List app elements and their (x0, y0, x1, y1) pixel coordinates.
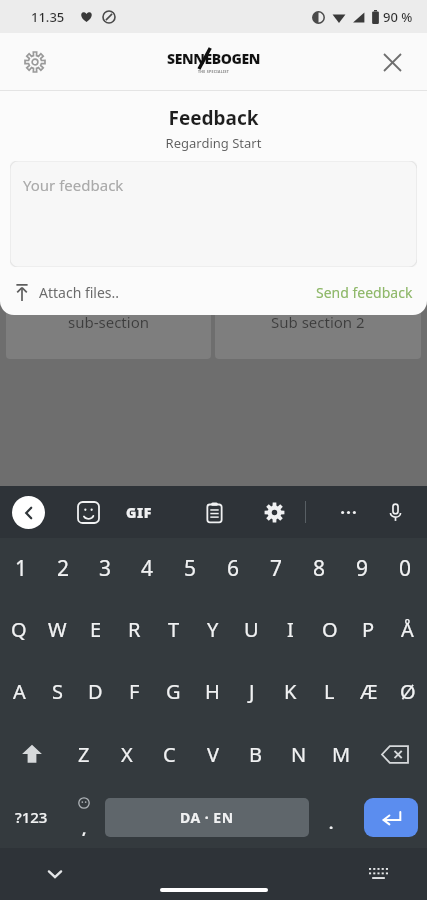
button[interactable]: GIF (126, 503, 152, 522)
button[interactable]: A (0, 660, 38, 722)
staticText: M (332, 741, 351, 768)
staticText: DA · EN (180, 808, 234, 827)
staticText: D (88, 678, 103, 705)
button[interactable]: D (76, 660, 115, 722)
button[interactable]: C (148, 722, 191, 786)
button[interactable]: X (105, 722, 148, 786)
staticText: 4 (141, 554, 154, 583)
button[interactable]: Back (12, 496, 45, 529)
button[interactable]: More options (330, 494, 366, 530)
button[interactable]: V (191, 722, 234, 786)
button[interactable]: Send feedback (314, 277, 415, 308)
button[interactable]: Y (193, 598, 232, 660)
button[interactable]: Close (375, 45, 409, 79)
button[interactable]: Æ (349, 660, 388, 722)
button[interactable]: J (232, 660, 271, 722)
staticText: Z (78, 741, 90, 768)
button[interactable]: G (154, 660, 193, 722)
staticText: 90 % (383, 8, 413, 26)
button[interactable]: Shift (0, 722, 63, 786)
button[interactable]: 5 (169, 538, 212, 598)
staticText: 5 (184, 554, 197, 583)
button[interactable]: 3 (84, 538, 126, 598)
button[interactable]: R (115, 598, 154, 660)
button[interactable]: Keyboard settings (256, 494, 292, 530)
button[interactable]: 8 (298, 538, 341, 598)
button[interactable]: E (76, 598, 115, 660)
staticText: V (207, 741, 219, 768)
button[interactable]: U (232, 598, 271, 660)
staticText: Y (207, 616, 219, 643)
staticText: sub-section (68, 312, 149, 332)
button[interactable]: Backspace (363, 722, 427, 786)
button[interactable]: Z (63, 722, 105, 786)
button[interactable]: 7 (255, 538, 298, 598)
button[interactable]: Attach files.. (12, 276, 120, 308)
button[interactable]: 0 (384, 538, 427, 598)
button[interactable]: Ø (388, 660, 427, 722)
button[interactable]: F (115, 660, 154, 722)
staticText: Ø (400, 678, 416, 705)
staticText: Attach files.. (39, 283, 120, 302)
button[interactable]: Clipboard (196, 494, 232, 530)
staticText: P (362, 616, 375, 643)
button[interactable]: SENNEBOGEN (167, 49, 261, 74)
button[interactable]: Switch keyboard (361, 857, 395, 891)
staticText: 2 (57, 554, 70, 583)
button[interactable]: 9 (341, 538, 384, 598)
button[interactable]: Period (309, 786, 354, 848)
staticText: ?123 (15, 807, 48, 827)
button[interactable]: Hide keyboard (38, 857, 72, 891)
button[interactable]: Emoji (70, 494, 106, 530)
staticText: C (163, 741, 176, 768)
button[interactable]: M (320, 722, 363, 786)
button[interactable]: Settings (18, 45, 52, 79)
button[interactable]: DA · EN (105, 798, 309, 837)
staticText: , (82, 818, 87, 838)
staticText: A (13, 678, 26, 705)
button[interactable]: Enter (364, 798, 418, 837)
button[interactable]: N (277, 722, 320, 786)
staticText: 8 (313, 554, 326, 583)
button[interactable]: P (349, 598, 388, 660)
staticText: L (324, 678, 335, 705)
button[interactable]: B (234, 722, 277, 786)
staticText: 7 (270, 554, 283, 583)
staticText: H (205, 678, 220, 705)
staticText: Feedback (0, 105, 427, 131)
staticText: Your feedback (23, 175, 124, 195)
button[interactable]: O (310, 598, 349, 660)
button[interactable]: Emoji and comma (62, 786, 105, 848)
staticText: X (121, 741, 133, 768)
button[interactable]: ?123 (0, 786, 62, 848)
staticText: 1 (15, 554, 28, 583)
button[interactable]: Sub section 2 (215, 307, 421, 359)
staticText: J (249, 678, 255, 705)
staticText: Send feedback (316, 283, 413, 302)
button[interactable]: sub-section (6, 307, 211, 359)
button[interactable]: 1 (0, 538, 42, 598)
staticText: THE SPECIALIST (198, 69, 230, 74)
button[interactable]: 6 (212, 538, 255, 598)
button[interactable]: Å (388, 598, 427, 660)
staticText: U (244, 616, 259, 643)
button[interactable]: 2 (42, 538, 84, 598)
staticText: R (128, 616, 141, 643)
button[interactable]: W (38, 598, 76, 660)
button[interactable]: I (271, 598, 310, 660)
staticText: F (129, 678, 140, 705)
button[interactable]: S (38, 660, 76, 722)
staticText: Sub section 2 (271, 312, 365, 332)
button[interactable]: Your feedback (10, 161, 417, 267)
staticText: Regarding Start (0, 134, 427, 152)
staticText: 6 (227, 554, 240, 583)
button[interactable]: T (154, 598, 193, 660)
button[interactable]: K (271, 660, 310, 722)
button[interactable]: Voice input (377, 494, 413, 530)
staticText: Æ (360, 678, 378, 705)
button[interactable]: Q (0, 598, 38, 660)
staticText: E (90, 616, 102, 643)
button[interactable]: L (310, 660, 349, 722)
button[interactable]: 4 (126, 538, 169, 598)
button[interactable]: H (193, 660, 232, 722)
